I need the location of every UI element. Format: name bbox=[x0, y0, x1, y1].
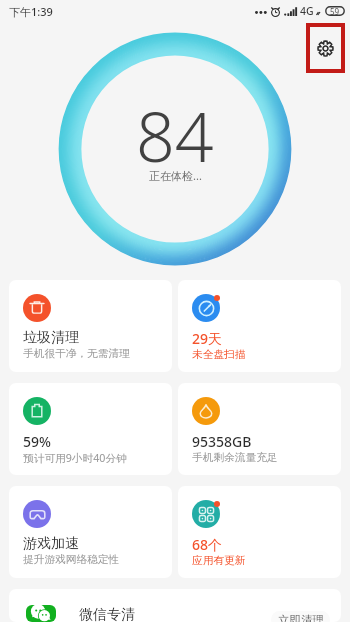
button[interactable]: 95358GB bbox=[178, 383, 341, 475]
staticText: 游戏加速 bbox=[23, 535, 79, 553]
button[interactable]: 游戏加速 bbox=[9, 486, 172, 578]
staticText: 68个 bbox=[192, 535, 223, 554]
staticText: 4G bbox=[300, 4, 314, 18]
staticText: 手机很干净，无需清理 bbox=[23, 347, 130, 360]
staticText: 未全盘扫描 bbox=[192, 348, 246, 361]
staticText: 预计可用9小时40分钟 bbox=[23, 451, 127, 466]
staticText: 手机剩余流量充足 bbox=[192, 451, 278, 464]
staticText: 垃圾清理 bbox=[23, 329, 79, 347]
staticText: 59 bbox=[330, 6, 340, 16]
staticText: 59% bbox=[23, 432, 51, 451]
button[interactable]: 垃圾清理 bbox=[9, 280, 172, 372]
staticText: 微信专清 bbox=[79, 606, 135, 622]
staticText: 84 bbox=[136, 89, 214, 182]
staticText: 提升游戏网络稳定性 bbox=[23, 553, 120, 566]
button[interactable]: 59% bbox=[9, 383, 172, 475]
staticText: 29天 bbox=[192, 329, 223, 348]
button[interactable]: Settings bbox=[306, 23, 345, 73]
staticText: 应用有更新 bbox=[192, 554, 246, 567]
staticText: 下午1:39 bbox=[9, 4, 53, 19]
button[interactable]: 微信专清 bbox=[9, 589, 341, 622]
button[interactable]: 29天 bbox=[178, 280, 341, 372]
staticText: 正在体检... bbox=[149, 168, 202, 183]
button[interactable]: 立即清理 bbox=[271, 611, 330, 622]
staticText: 立即清理 bbox=[278, 613, 324, 622]
button[interactable]: 68个 bbox=[178, 486, 341, 578]
staticText: 95358GB bbox=[192, 432, 252, 451]
